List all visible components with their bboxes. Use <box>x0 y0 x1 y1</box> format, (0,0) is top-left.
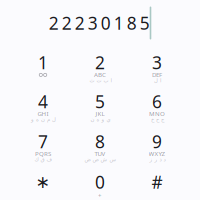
staticText: 2 <box>95 51 105 74</box>
staticText: 9 <box>152 130 162 153</box>
staticText: س ش ص ض <box>84 156 116 162</box>
staticText: 7 <box>38 130 48 153</box>
staticText: DEF <box>152 70 162 79</box>
staticText: ∗ <box>35 172 50 192</box>
staticText: 4 <box>38 90 48 113</box>
staticText: TUV <box>94 149 105 158</box>
staticText: د ذ ر ز <box>149 156 165 162</box>
staticText: 3 <box>152 51 162 74</box>
staticText: MNO <box>149 109 165 118</box>
staticText: JKL <box>95 109 104 118</box>
staticText: ج ح خ <box>150 116 163 122</box>
button[interactable]: 2 <box>73 42 127 82</box>
staticText: ا ب ت ث <box>89 77 111 83</box>
button[interactable]: # <box>130 162 184 200</box>
staticText: 5 <box>95 90 105 113</box>
button[interactable]: 3 <box>130 42 184 82</box>
staticText: ا ل <box>153 77 160 83</box>
button[interactable]: 8 <box>73 121 127 161</box>
staticText: PQRS <box>35 149 51 158</box>
button[interactable]: 1 <box>16 42 70 82</box>
staticText: 6 <box>152 90 162 113</box>
button[interactable]: 7 <box>16 121 70 161</box>
staticText: ف ق ك <box>34 156 52 162</box>
staticText: # <box>151 170 162 194</box>
button[interactable]: 4 <box>16 81 70 121</box>
button[interactable]: 0 <box>73 162 127 200</box>
button[interactable]: 5 <box>73 81 127 121</box>
staticText: ABC <box>94 70 106 79</box>
staticText: WXYZ <box>148 149 165 158</box>
staticText: GHI <box>37 109 48 118</box>
staticText: 0 <box>95 170 105 194</box>
staticText: ل م ن ه و <box>30 116 55 122</box>
staticText: + <box>98 191 102 200</box>
staticText: 1 <box>38 51 48 74</box>
button[interactable]: 6 <box>130 81 184 121</box>
button[interactable]: 9 <box>130 121 184 161</box>
staticText: 22230185 <box>49 11 150 35</box>
button[interactable]: ∗ <box>16 162 70 200</box>
staticText: ي و ه ن <box>90 116 110 122</box>
staticText: 8 <box>95 130 105 153</box>
